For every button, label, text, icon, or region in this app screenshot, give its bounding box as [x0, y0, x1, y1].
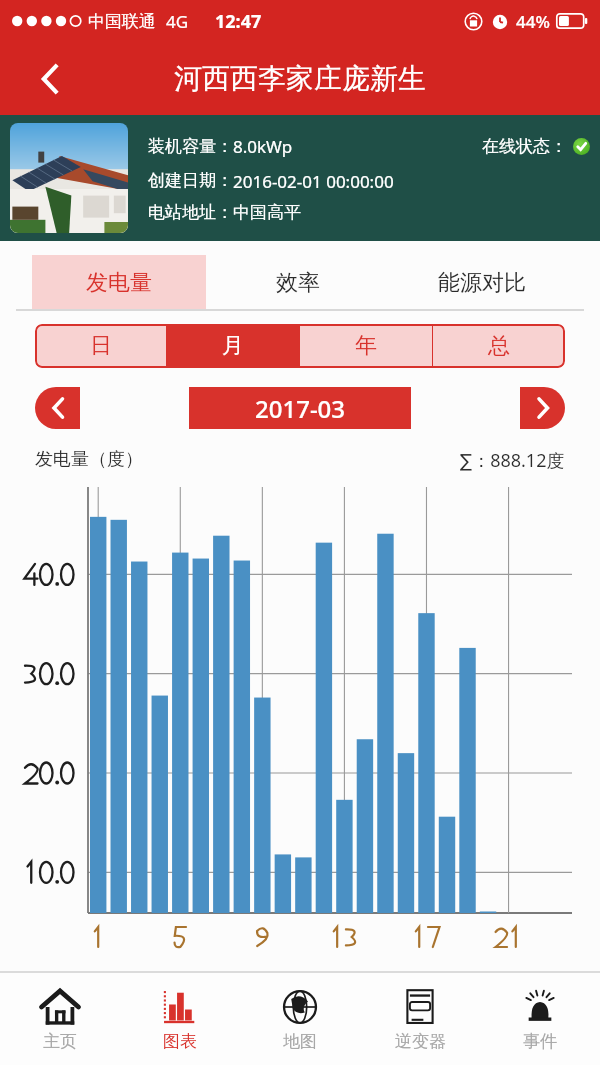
staticText: 主页: [43, 1031, 77, 1052]
staticText: 创建日期：: [148, 170, 233, 191]
staticText: 在线状态：: [482, 136, 567, 157]
staticText: 中国联通: [88, 11, 156, 32]
button[interactable]: 效率: [206, 255, 390, 311]
staticText: 月: [222, 332, 244, 360]
staticText: 44%: [516, 10, 550, 33]
staticText: 12:47: [215, 9, 262, 34]
staticText: 中国高平: [233, 202, 301, 223]
button[interactable]: 逆变器: [360, 973, 480, 1065]
staticText: 4G: [166, 10, 189, 33]
button[interactable]: 日: [35, 324, 166, 368]
staticText: 装机容量：: [148, 136, 233, 157]
button[interactable]: 能源对比: [390, 255, 574, 311]
button[interactable]: 总: [433, 324, 565, 368]
staticText: 2016-02-01 00:00:00: [233, 170, 394, 193]
button[interactable]: 事件: [480, 973, 600, 1065]
button[interactable]: 发电量: [32, 255, 206, 311]
button[interactable]: 图表: [120, 973, 240, 1065]
staticText: 能源对比: [438, 269, 526, 297]
button[interactable]: 主页: [0, 973, 120, 1065]
staticText: 年: [355, 332, 377, 360]
button[interactable]: 月: [167, 324, 299, 368]
staticText: 图表: [163, 1031, 197, 1052]
staticText: 总: [488, 332, 510, 360]
button[interactable]: Previous month: [35, 387, 80, 429]
staticText: 日: [90, 332, 112, 360]
staticText: ∑：888.12度: [460, 448, 565, 473]
button[interactable]: 地图: [240, 973, 360, 1065]
button[interactable]: 2017-03: [189, 387, 411, 429]
staticText: 地图: [283, 1031, 317, 1052]
staticText: 发电量（度）: [35, 448, 143, 471]
button[interactable]: Back: [22, 51, 78, 107]
staticText: 效率: [276, 269, 320, 297]
staticText: 电站地址：: [148, 202, 233, 223]
staticText: 2017-03: [255, 392, 346, 425]
staticText: 8.0kWp: [233, 135, 293, 158]
staticText: 事件: [523, 1031, 557, 1052]
staticText: 河西西李家庄庞新生: [174, 61, 426, 96]
button[interactable]: 年: [300, 324, 432, 368]
button[interactable]: Next month: [520, 387, 565, 429]
staticText: 逆变器: [395, 1031, 446, 1052]
staticText: 发电量: [86, 269, 152, 297]
